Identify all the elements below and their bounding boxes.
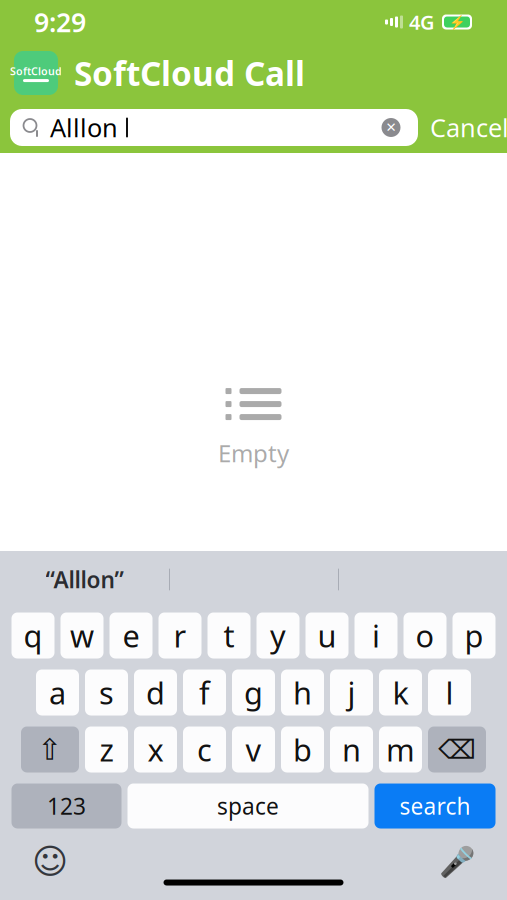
button[interactable]: Delete bbox=[428, 726, 486, 772]
staticText: space bbox=[217, 791, 279, 821]
button[interactable]: f bbox=[183, 669, 226, 715]
staticText: Empty bbox=[218, 437, 289, 469]
button[interactable]: x bbox=[134, 726, 177, 772]
button[interactable]: space bbox=[127, 783, 368, 828]
staticText: r bbox=[173, 615, 186, 656]
staticText: z bbox=[99, 729, 113, 770]
button[interactable]: “Alllon” bbox=[0, 557, 169, 601]
button[interactable]: y bbox=[256, 612, 299, 658]
staticText: “Alllon” bbox=[45, 564, 123, 594]
staticText: 123 bbox=[47, 791, 86, 821]
staticText: Cancel bbox=[430, 111, 507, 144]
staticText: b bbox=[293, 729, 312, 770]
button[interactable]: i bbox=[354, 612, 397, 658]
button[interactable]: v bbox=[232, 726, 275, 772]
button[interactable]: l bbox=[428, 669, 471, 715]
staticText: o bbox=[415, 615, 434, 656]
staticText: w bbox=[70, 615, 94, 656]
staticText: c bbox=[197, 729, 212, 770]
button[interactable]: s bbox=[85, 669, 128, 715]
staticText: a bbox=[49, 672, 66, 713]
staticText: h bbox=[293, 672, 312, 713]
staticText: g bbox=[244, 672, 263, 713]
staticText: j bbox=[347, 672, 355, 713]
staticText: v bbox=[245, 729, 261, 770]
staticText: ⌫ bbox=[438, 734, 476, 765]
staticText: Alllon bbox=[50, 111, 118, 144]
staticText: search bbox=[399, 791, 470, 821]
staticText: p bbox=[464, 615, 483, 656]
staticText: u bbox=[317, 615, 336, 656]
button[interactable]: r bbox=[158, 612, 201, 658]
staticText: n bbox=[342, 729, 361, 770]
button[interactable]: g bbox=[232, 669, 275, 715]
button[interactable]: n bbox=[330, 726, 373, 772]
staticText: s bbox=[99, 672, 114, 713]
button[interactable]: z bbox=[85, 726, 128, 772]
button[interactable]: a bbox=[36, 669, 79, 715]
staticText: 9:29 bbox=[34, 4, 86, 40]
staticText: l bbox=[445, 672, 453, 713]
staticText: 🎤 bbox=[438, 845, 475, 878]
staticText: x bbox=[147, 729, 163, 770]
staticText: ⇧ bbox=[37, 733, 62, 766]
button[interactable]: h bbox=[281, 669, 324, 715]
staticText: ⚡ bbox=[448, 14, 465, 30]
button[interactable]: 123 bbox=[11, 783, 121, 828]
staticText: q bbox=[23, 615, 42, 656]
staticText: ☺ bbox=[32, 842, 68, 881]
button[interactable]: w bbox=[60, 612, 103, 658]
button[interactable]: m bbox=[379, 726, 422, 772]
button[interactable]: Shift bbox=[21, 726, 79, 772]
button[interactable]: c bbox=[183, 726, 226, 772]
button[interactable]: Dictation bbox=[429, 837, 485, 885]
staticText: SoftCloud Call bbox=[74, 51, 305, 95]
button[interactable]: b bbox=[281, 726, 324, 772]
button[interactable]: k bbox=[379, 669, 422, 715]
button[interactable]: u bbox=[305, 612, 348, 658]
staticText: m bbox=[386, 729, 415, 770]
staticText: t bbox=[223, 615, 234, 656]
staticText: f bbox=[199, 672, 210, 713]
button[interactable]: Emoji bbox=[22, 837, 78, 885]
staticText: y bbox=[270, 615, 286, 656]
button[interactable]: o bbox=[403, 612, 446, 658]
button[interactable]: Clear text bbox=[376, 112, 406, 142]
button[interactable]: q bbox=[11, 612, 54, 658]
button[interactable]: p bbox=[452, 612, 495, 658]
button[interactable]: d bbox=[134, 669, 177, 715]
staticText: SoftCloud bbox=[10, 64, 62, 78]
button[interactable]: e bbox=[109, 612, 152, 658]
button[interactable]: Cancel bbox=[430, 109, 507, 146]
staticText: 4G bbox=[409, 9, 435, 35]
staticText: ✕ bbox=[385, 120, 396, 135]
staticText: e bbox=[122, 615, 139, 656]
button[interactable]: search bbox=[374, 783, 495, 828]
staticText: d bbox=[146, 672, 165, 713]
staticText: k bbox=[392, 672, 408, 713]
button[interactable]: t bbox=[207, 612, 250, 658]
button[interactable]: j bbox=[330, 669, 373, 715]
staticText: i bbox=[372, 615, 380, 656]
